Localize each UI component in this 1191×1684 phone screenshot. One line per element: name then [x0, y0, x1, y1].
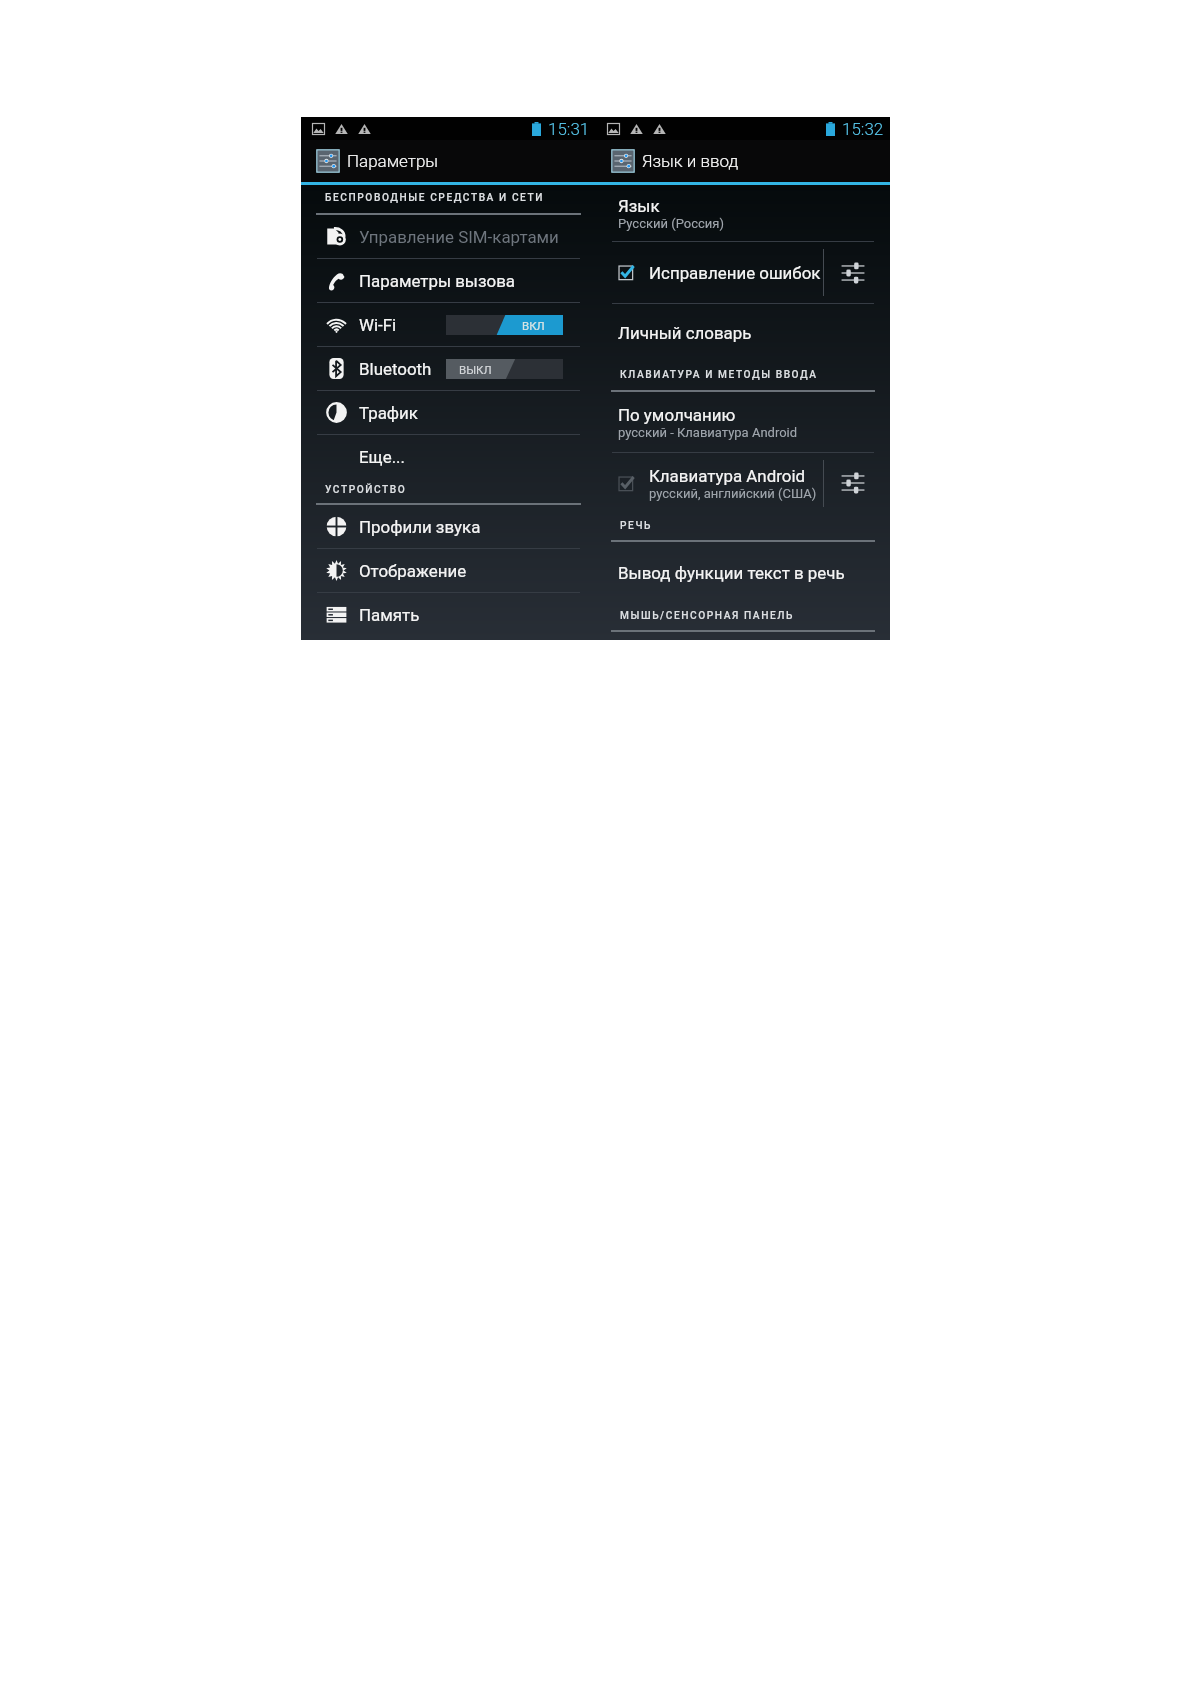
staticText: По умолчанию	[618, 405, 736, 425]
staticText: Русский (Россия)	[618, 216, 724, 231]
staticText: БЕСПРОВОДНЫЕ СРЕДСТВА И СЕТИ	[325, 192, 544, 204]
staticText: Управление SIM-картами	[359, 227, 559, 247]
button[interactable]: Off	[446, 359, 563, 379]
button[interactable]: Параметры вызова	[301, 259, 596, 302]
button[interactable]: Личный словарь	[596, 304, 890, 361]
staticText: Параметры	[347, 151, 439, 171]
staticText: Язык и ввод	[642, 151, 739, 171]
staticText: Язык	[618, 196, 660, 216]
button[interactable]: Память	[301, 593, 596, 636]
staticText: Отображение	[359, 561, 467, 581]
staticText: УСТРОЙСТВО	[325, 484, 407, 496]
button[interactable]: Клавиатура Android	[596, 453, 823, 513]
staticText: Исправление ошибок	[649, 263, 821, 283]
staticText: КЛАВИАТУРА И МЕТОДЫ ВВОДА	[620, 369, 818, 381]
staticText: РЕЧЬ	[620, 520, 652, 532]
button[interactable]: Wi-Fi	[301, 303, 596, 346]
staticText: 15:32	[842, 119, 884, 139]
staticText: Параметры вызова	[359, 271, 516, 291]
button[interactable]: On	[446, 315, 563, 335]
staticText: Трафик	[359, 403, 418, 423]
button[interactable]: Профили звука	[301, 505, 596, 548]
staticText: 15:31	[548, 119, 590, 139]
button[interactable]: Отображение	[301, 549, 596, 592]
button[interactable]: Трафик	[301, 391, 596, 434]
staticText: русский, английский (США)	[649, 486, 817, 501]
staticText: Профили звука	[359, 517, 481, 537]
staticText: МЫШЬ/СЕНСОРНАЯ ПАНЕЛЬ	[620, 610, 794, 622]
button[interactable]: Язык	[596, 185, 890, 241]
button[interactable]: По умолчанию	[596, 392, 890, 452]
staticText: Личный словарь	[618, 323, 752, 343]
button[interactable]: Bluetooth	[301, 347, 596, 390]
staticText: Еще...	[359, 447, 405, 467]
button[interactable]: Управление SIM-картами	[301, 215, 596, 258]
button[interactable]: Вывод функции текст в речь	[596, 542, 890, 603]
staticText: русский - Клавиатура Android	[618, 425, 798, 440]
button[interactable]: Еще...	[301, 435, 596, 478]
button[interactable]: Settings	[824, 453, 890, 513]
staticText: Wi-Fi	[359, 315, 397, 335]
staticText: Память	[359, 605, 420, 625]
staticText: Вывод функции текст в речь	[618, 563, 845, 583]
button[interactable]: Settings	[824, 242, 890, 303]
staticText: ВКЛ	[522, 319, 545, 332]
staticText: Bluetooth	[359, 359, 432, 379]
staticText: Клавиатура Android	[649, 466, 806, 486]
staticText: ВЫКЛ	[459, 363, 492, 376]
button[interactable]: Исправление ошибок	[596, 242, 823, 303]
